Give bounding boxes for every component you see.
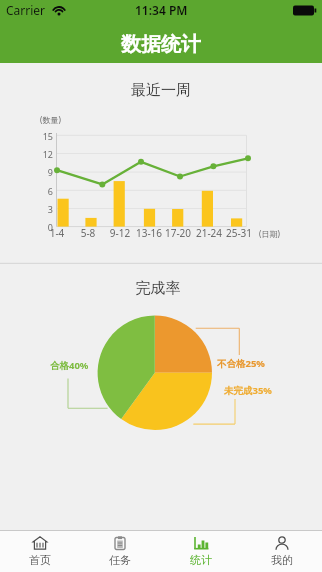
staticText: 任务: [109, 553, 131, 567]
staticText: 9: [35, 166, 53, 178]
button[interactable]: 我的: [241, 531, 322, 572]
staticText: 0: [35, 221, 53, 233]
staticText: 1-4: [39, 226, 75, 240]
staticText: 15: [35, 130, 53, 142]
button[interactable]: 首页: [0, 531, 80, 572]
staticText: 数据统计: [121, 32, 201, 57]
staticText: 完成率: [0, 279, 319, 298]
staticText: 统计: [190, 553, 212, 567]
staticText: 未完成35%: [224, 384, 272, 397]
button[interactable]: 任务: [80, 531, 160, 572]
staticText: 9-12: [102, 226, 138, 240]
staticText: 13-16: [131, 226, 167, 240]
staticText: 3: [35, 203, 53, 215]
staticText: 最近一周: [0, 81, 322, 100]
staticText: 11:34 PM: [135, 2, 188, 18]
staticText: 不合格25%: [217, 357, 265, 370]
staticText: 我的: [271, 553, 293, 567]
staticText: (日期): [259, 228, 280, 239]
staticText: 5-8: [70, 226, 106, 240]
staticText: 12: [35, 148, 53, 160]
staticText: 首页: [29, 553, 51, 567]
staticText: 25-31: [221, 226, 257, 240]
staticText: 17-20: [160, 226, 196, 240]
button[interactable]: 统计: [160, 531, 241, 572]
staticText: Carrier: [6, 2, 46, 18]
staticText: 6: [35, 185, 53, 197]
staticText: 合格40%: [50, 359, 89, 372]
staticText: 21-24: [191, 226, 227, 240]
staticText: (数量): [40, 114, 61, 125]
